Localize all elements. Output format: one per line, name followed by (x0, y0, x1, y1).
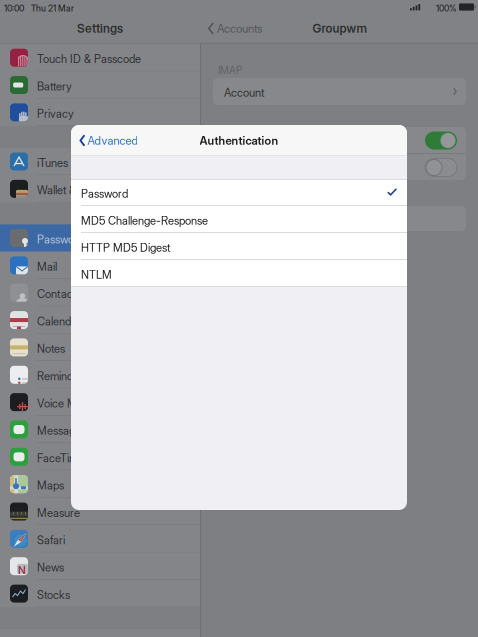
staticText: Passwords & Accounts (37, 232, 147, 246)
staticText: Safari (37, 533, 65, 547)
staticText: Calendar (37, 315, 81, 328)
staticText: Voice Memos (37, 397, 103, 410)
staticText: Measure (37, 506, 80, 520)
staticText: Settings (77, 21, 123, 36)
button[interactable]: Reminders (0, 361, 200, 388)
staticText: iTunes & App Store (37, 156, 129, 170)
staticText: Thu 21 Mar (31, 3, 74, 14)
button[interactable]: Messages (0, 416, 200, 443)
staticText: Accounts (217, 22, 262, 35)
button[interactable]: Mail (0, 252, 200, 279)
button[interactable]: Passwords & Accounts (0, 224, 200, 252)
button[interactable]: HTTP MD5 Digest (71, 233, 407, 260)
button[interactable]: Touch ID & Passcode (0, 44, 200, 71)
staticText: 10:00 (4, 3, 24, 14)
button[interactable]: FaceTime (0, 443, 200, 471)
staticText: Battery (37, 79, 72, 93)
button[interactable]: Password (71, 179, 407, 206)
staticText: MD5 Challenge-Response (81, 214, 208, 228)
staticText: Messages (37, 424, 86, 438)
staticText: Stocks (37, 588, 70, 602)
staticText: 100% (436, 3, 456, 13)
button[interactable]: Battery (0, 71, 200, 99)
button[interactable]: Notes (0, 334, 200, 361)
staticText: IMAP (218, 64, 242, 76)
button[interactable]: Privacy (0, 99, 200, 126)
button[interactable]: Calendar (0, 306, 200, 334)
button[interactable]: Measure (0, 498, 200, 525)
staticText: Maps (37, 479, 64, 492)
button[interactable]: Voice Memos (0, 388, 200, 416)
button[interactable]: Contacts (0, 279, 200, 306)
staticText: N (18, 564, 26, 577)
staticText: Reminders (37, 369, 88, 383)
button[interactable]: MD5 Challenge-Response (71, 206, 407, 233)
button[interactable]: Safari (0, 525, 200, 553)
staticText: News (37, 561, 64, 574)
button[interactable]: Advanced (71, 125, 137, 156)
staticText: Wallet & Apple Pay (37, 183, 128, 197)
staticText: Account (224, 86, 264, 100)
button[interactable]: N (0, 553, 200, 580)
staticText: Privacy (37, 107, 74, 120)
staticText: HTTP MD5 Digest (81, 241, 170, 255)
staticText: Touch ID & Passcode (37, 52, 141, 66)
button[interactable]: Wallet & Apple Pay (0, 175, 200, 203)
button[interactable]: Maps (0, 470, 200, 498)
button[interactable]: iTunes & App Store (0, 148, 200, 175)
button[interactable]: Accounts (200, 14, 262, 43)
staticText: FaceTime (37, 451, 84, 465)
staticText: Advanced (87, 134, 137, 147)
staticText: Mail (37, 260, 57, 273)
staticText: Notes (37, 342, 65, 355)
button[interactable]: NTLM (71, 260, 407, 287)
staticText: Password (81, 187, 128, 201)
staticText: NTLM (81, 268, 112, 282)
staticText: Contacts (37, 287, 81, 301)
button[interactable]: Stocks (0, 580, 200, 607)
staticText: Groupwm (312, 21, 366, 36)
staticText: Authentication (199, 134, 278, 147)
